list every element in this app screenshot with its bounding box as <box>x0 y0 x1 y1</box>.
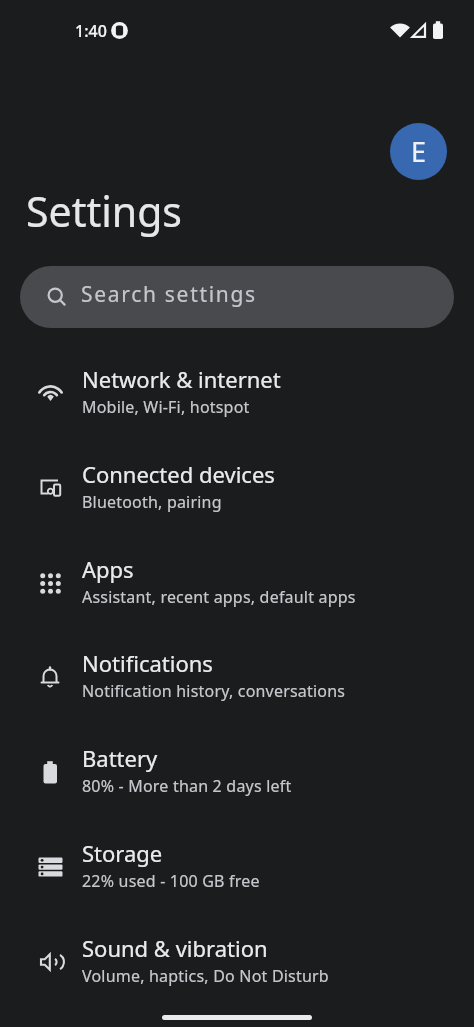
staticText: Assistant, recent apps, default apps <box>82 586 356 608</box>
staticText: 1:40 <box>75 20 107 42</box>
staticText: Connected devices <box>82 459 275 489</box>
staticText: Settings <box>26 183 183 239</box>
staticText: Apps <box>82 554 134 584</box>
staticText: Notification history, conversations <box>82 680 346 702</box>
staticText: 22% used - 100 GB free <box>82 870 260 892</box>
staticText: Network & internet <box>82 364 281 394</box>
staticText: E <box>411 133 427 170</box>
staticText: Sound & vibration <box>82 933 268 963</box>
staticText: Notifications <box>82 648 213 678</box>
staticText: Storage <box>82 838 163 868</box>
staticText: Search settings <box>81 280 257 309</box>
staticText: Battery <box>82 743 158 773</box>
staticText: Volume, haptics, Do Not Disturb <box>82 965 329 987</box>
staticText: 80% - More than 2 days left <box>82 775 292 797</box>
staticText: Mobile, Wi-Fi, hotspot <box>82 396 250 418</box>
staticText: Bluetooth, pairing <box>82 491 222 513</box>
